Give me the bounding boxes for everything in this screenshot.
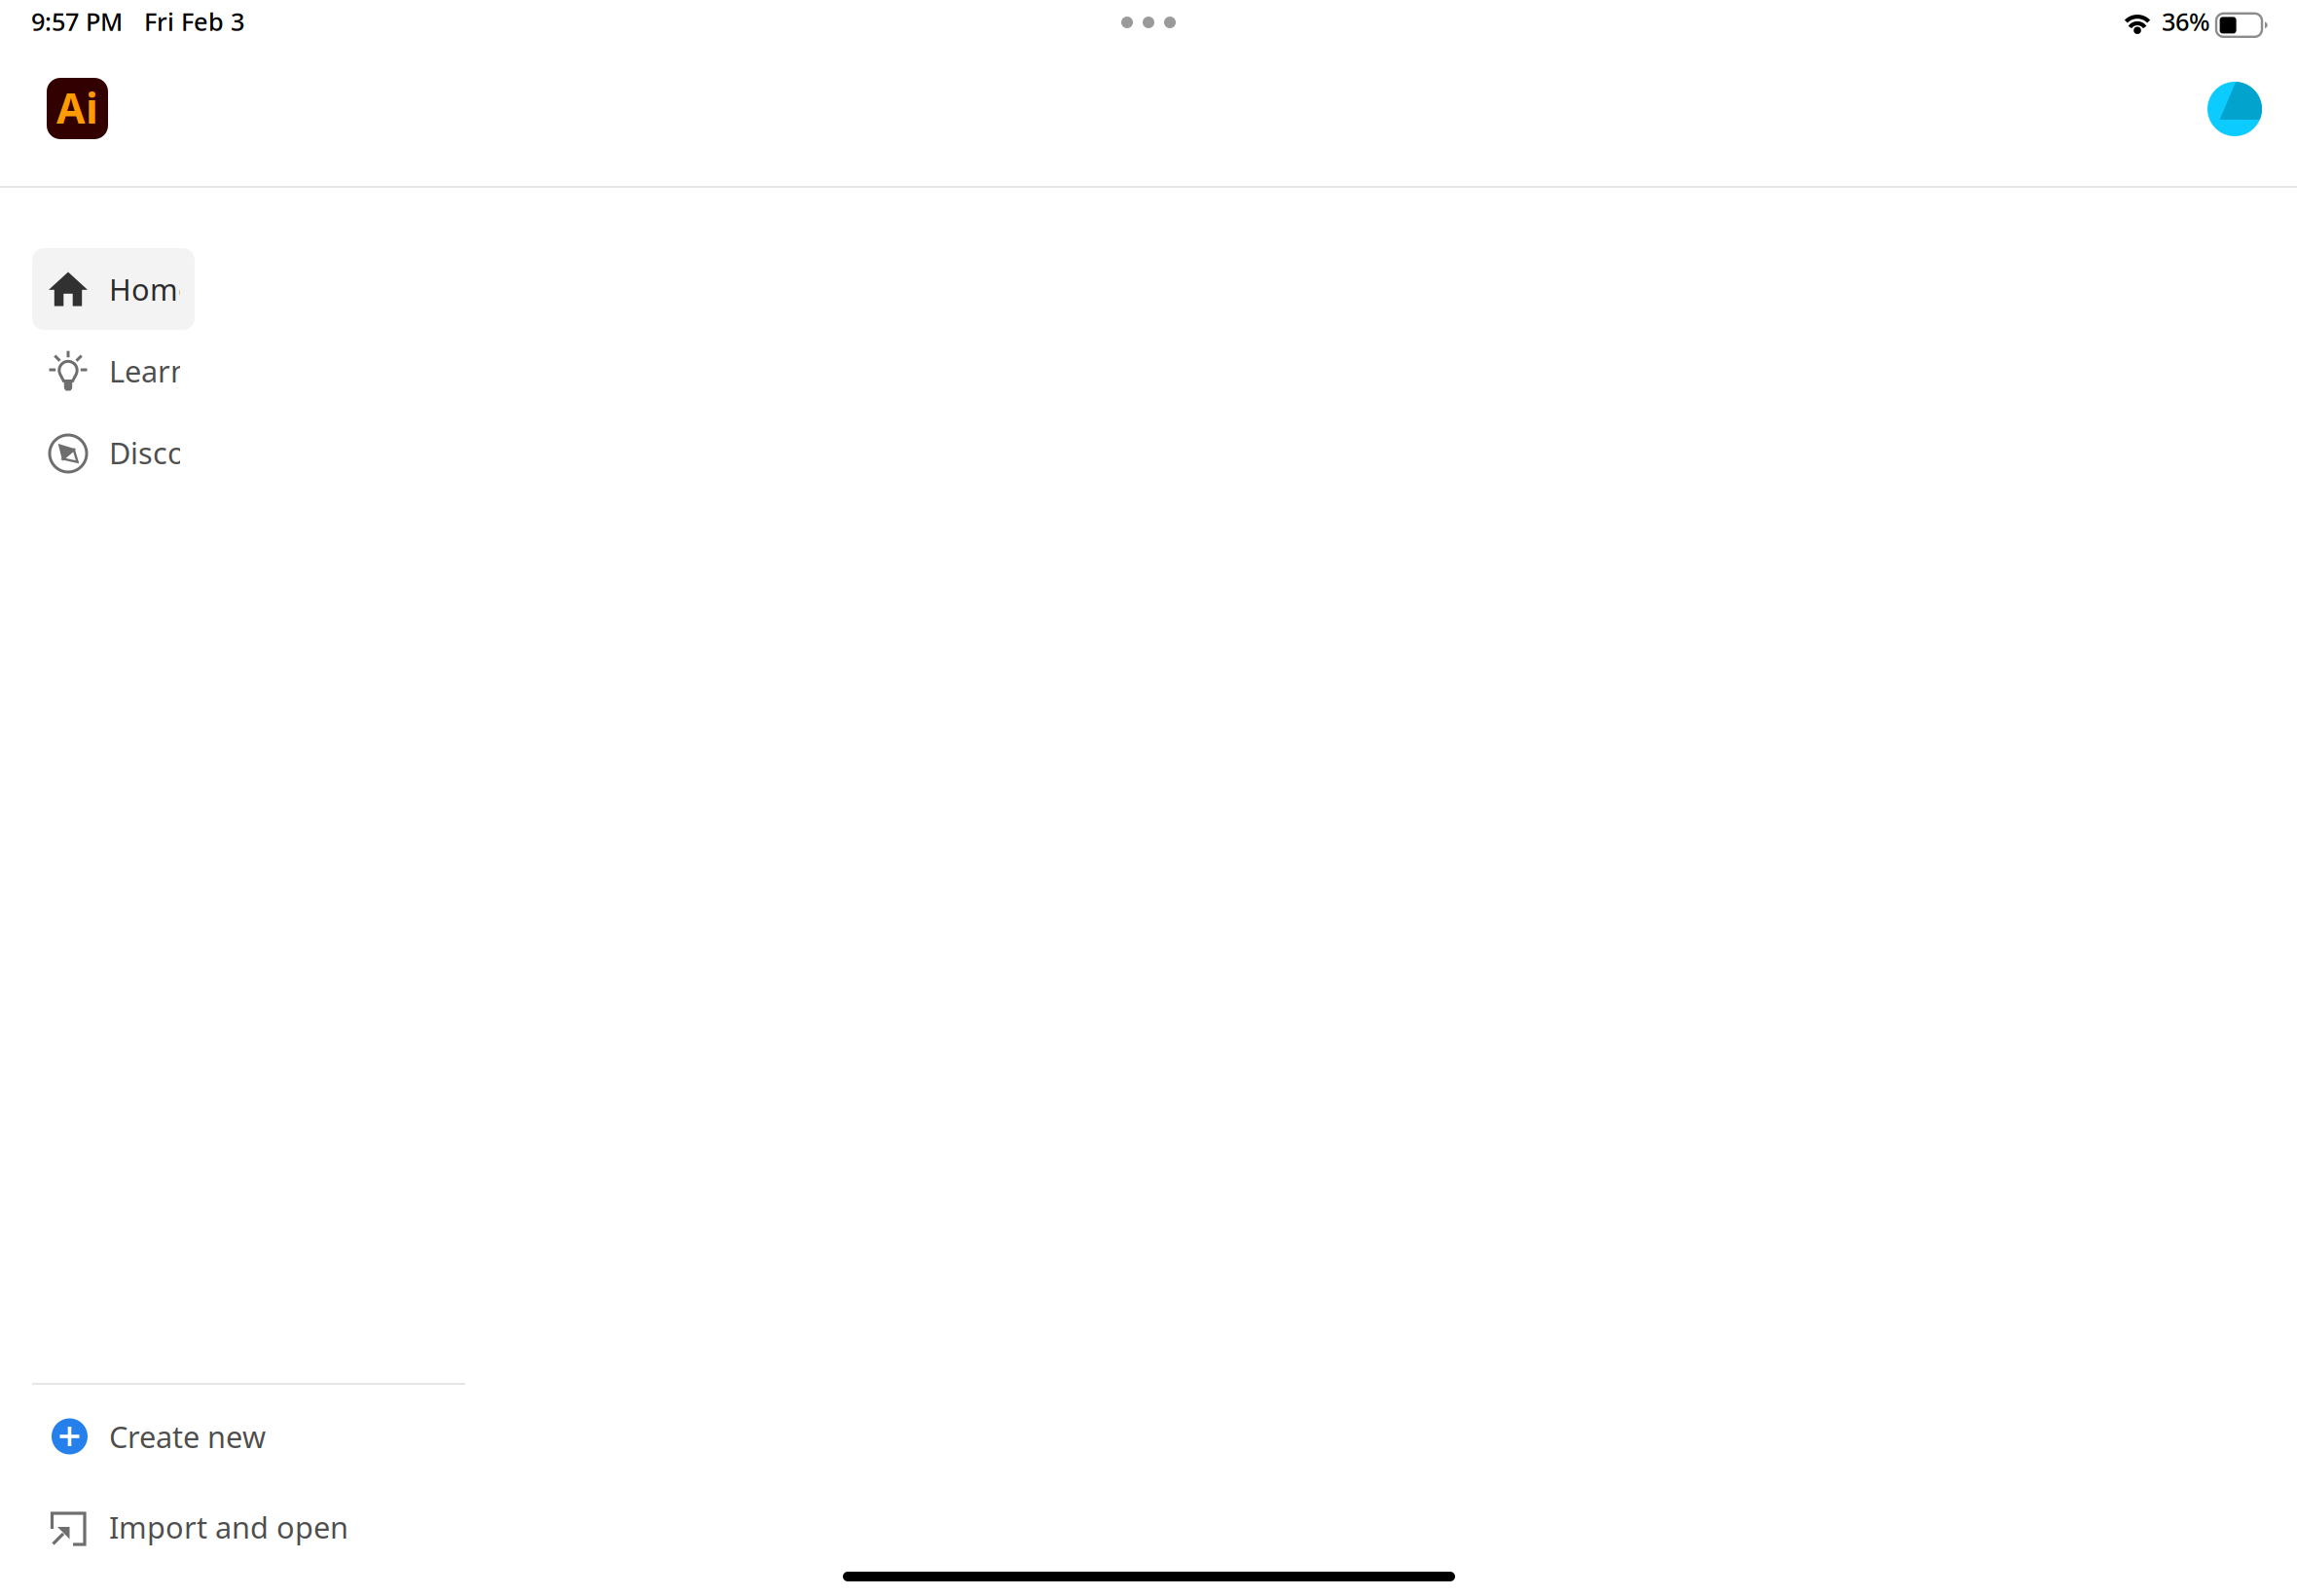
button[interactable]: Learn [32,330,195,412]
staticText: Ai [56,80,98,135]
button[interactable]: Adobe Illustrator [47,78,108,139]
staticText: 36% [2162,5,2210,38]
staticText: 9:57 PM [31,5,123,38]
button[interactable]: Discover [32,412,195,493]
staticText: Home [109,269,195,309]
staticText: Learn [109,351,189,391]
button[interactable]: Account [2207,82,2262,136]
staticText: Discover [109,433,230,472]
staticText: Import and open [109,1507,348,1547]
button[interactable]: Home [32,248,195,330]
button[interactable]: Create new [32,1396,465,1477]
button[interactable]: Import and open [32,1486,465,1568]
staticText: Create new [109,1417,266,1456]
staticText: Fri Feb 3 [144,5,244,38]
